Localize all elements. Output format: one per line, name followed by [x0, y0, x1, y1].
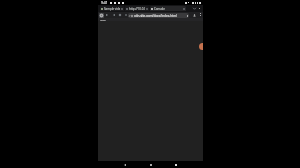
button[interactable]: More options: [198, 13, 202, 17]
staticText: cdn.site.com/docs/index.html: [134, 14, 177, 18]
staticText: Sample video – Ya: [104, 7, 120, 11]
button[interactable]: Forward: [112, 13, 116, 17]
staticText: http://10.0.0.12/x: [129, 7, 145, 11]
staticText: Console: [154, 7, 165, 11]
button[interactable]: Sample video – Ya: [100, 6, 124, 11]
button[interactable]: Tab list: [192, 6, 197, 11]
button[interactable]: Reload: [118, 13, 122, 17]
button[interactable]: Back: [122, 161, 129, 168]
button[interactable]: Apps: [99, 18, 107, 21]
button[interactable]: cdn.site.com/docs/index.html: [128, 13, 189, 18]
button[interactable]: More: [197, 6, 202, 11]
button[interactable]: Profile: [192, 13, 196, 17]
button[interactable]: Scroll to top: [199, 43, 203, 50]
staticText: 9:41: [101, 0, 108, 5]
button[interactable]: Home: [99, 13, 104, 18]
staticText: Apps: [100, 18, 106, 21]
button[interactable]: Bookmark: [124, 13, 128, 17]
button[interactable]: Home: [147, 161, 154, 168]
button[interactable]: Console: [150, 6, 186, 11]
button[interactable]: http://10.0.0.12/x: [125, 6, 149, 11]
button[interactable]: Back: [105, 13, 109, 17]
button[interactable]: Recents: [172, 161, 179, 168]
